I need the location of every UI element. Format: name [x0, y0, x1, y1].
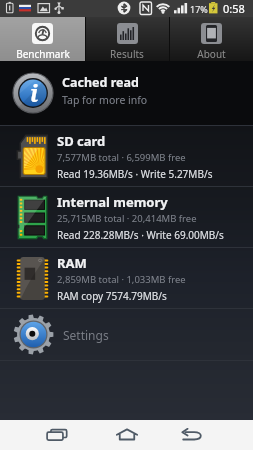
staticText: Internal memory [57, 193, 168, 211]
staticText: Settings [63, 327, 109, 343]
button[interactable]: Benchmark [0, 17, 85, 61]
staticText: Cached read [62, 74, 139, 91]
staticText: Benchmark [16, 47, 70, 61]
staticText: i [30, 77, 39, 108]
staticText: RAM [57, 254, 87, 272]
staticText: Results [110, 47, 144, 61]
button[interactable]: i [0, 61, 253, 125]
staticText: RAM copy 7574.79MB/s [57, 289, 167, 303]
staticText: Read 228.28MB/s · Write 69.00MB/s [57, 228, 224, 242]
staticText: 0:58 [223, 1, 245, 16]
button[interactable]: Settings [0, 309, 253, 360]
button[interactable]: RAM [0, 248, 253, 308]
button[interactable]: Results [85, 17, 169, 61]
staticText: 17% [190, 3, 208, 15]
button[interactable]: Back [170, 420, 214, 450]
staticText: Tap for more info [62, 93, 148, 107]
button[interactable]: About [169, 17, 253, 61]
staticText: 25,715MB total · 20,414MB free [57, 212, 197, 225]
button[interactable]: Recents [35, 420, 79, 450]
staticText: SD card [57, 132, 106, 150]
staticText: 2,859MB total · 1,033MB free [57, 273, 186, 286]
staticText: 7,577MB total · 6,599MB free [57, 151, 186, 164]
button[interactable]: SD card [0, 126, 253, 186]
button[interactable]: Home [105, 420, 149, 450]
staticText: Read 19.36MB/s · Write 5.27MB/s [57, 167, 213, 181]
button[interactable]: Internal memory [0, 187, 253, 247]
staticText: About [197, 47, 226, 61]
